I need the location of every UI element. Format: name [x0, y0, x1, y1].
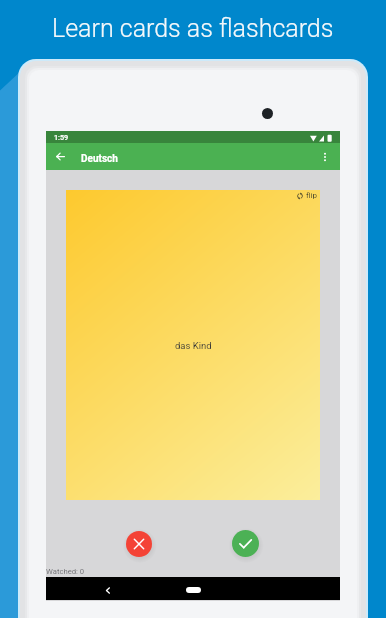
button[interactable]: Correct — [232, 530, 259, 557]
staticText: 1:59 — [54, 133, 69, 141]
staticText: Deutsch — [81, 153, 118, 165]
button[interactable]: das Kind — [66, 190, 320, 500]
button[interactable]: Back — [46, 143, 74, 170]
button[interactable]: Back — [99, 582, 116, 599]
staticText: das Kind — [175, 340, 212, 351]
button[interactable]: More options — [311, 143, 339, 170]
staticText: flip — [306, 191, 317, 200]
staticText: Learn cards as flashcards — [52, 14, 334, 43]
staticText: Watched: 0 — [46, 567, 85, 576]
button[interactable]: flip — [296, 191, 317, 200]
button[interactable]: Wrong — [126, 531, 152, 557]
